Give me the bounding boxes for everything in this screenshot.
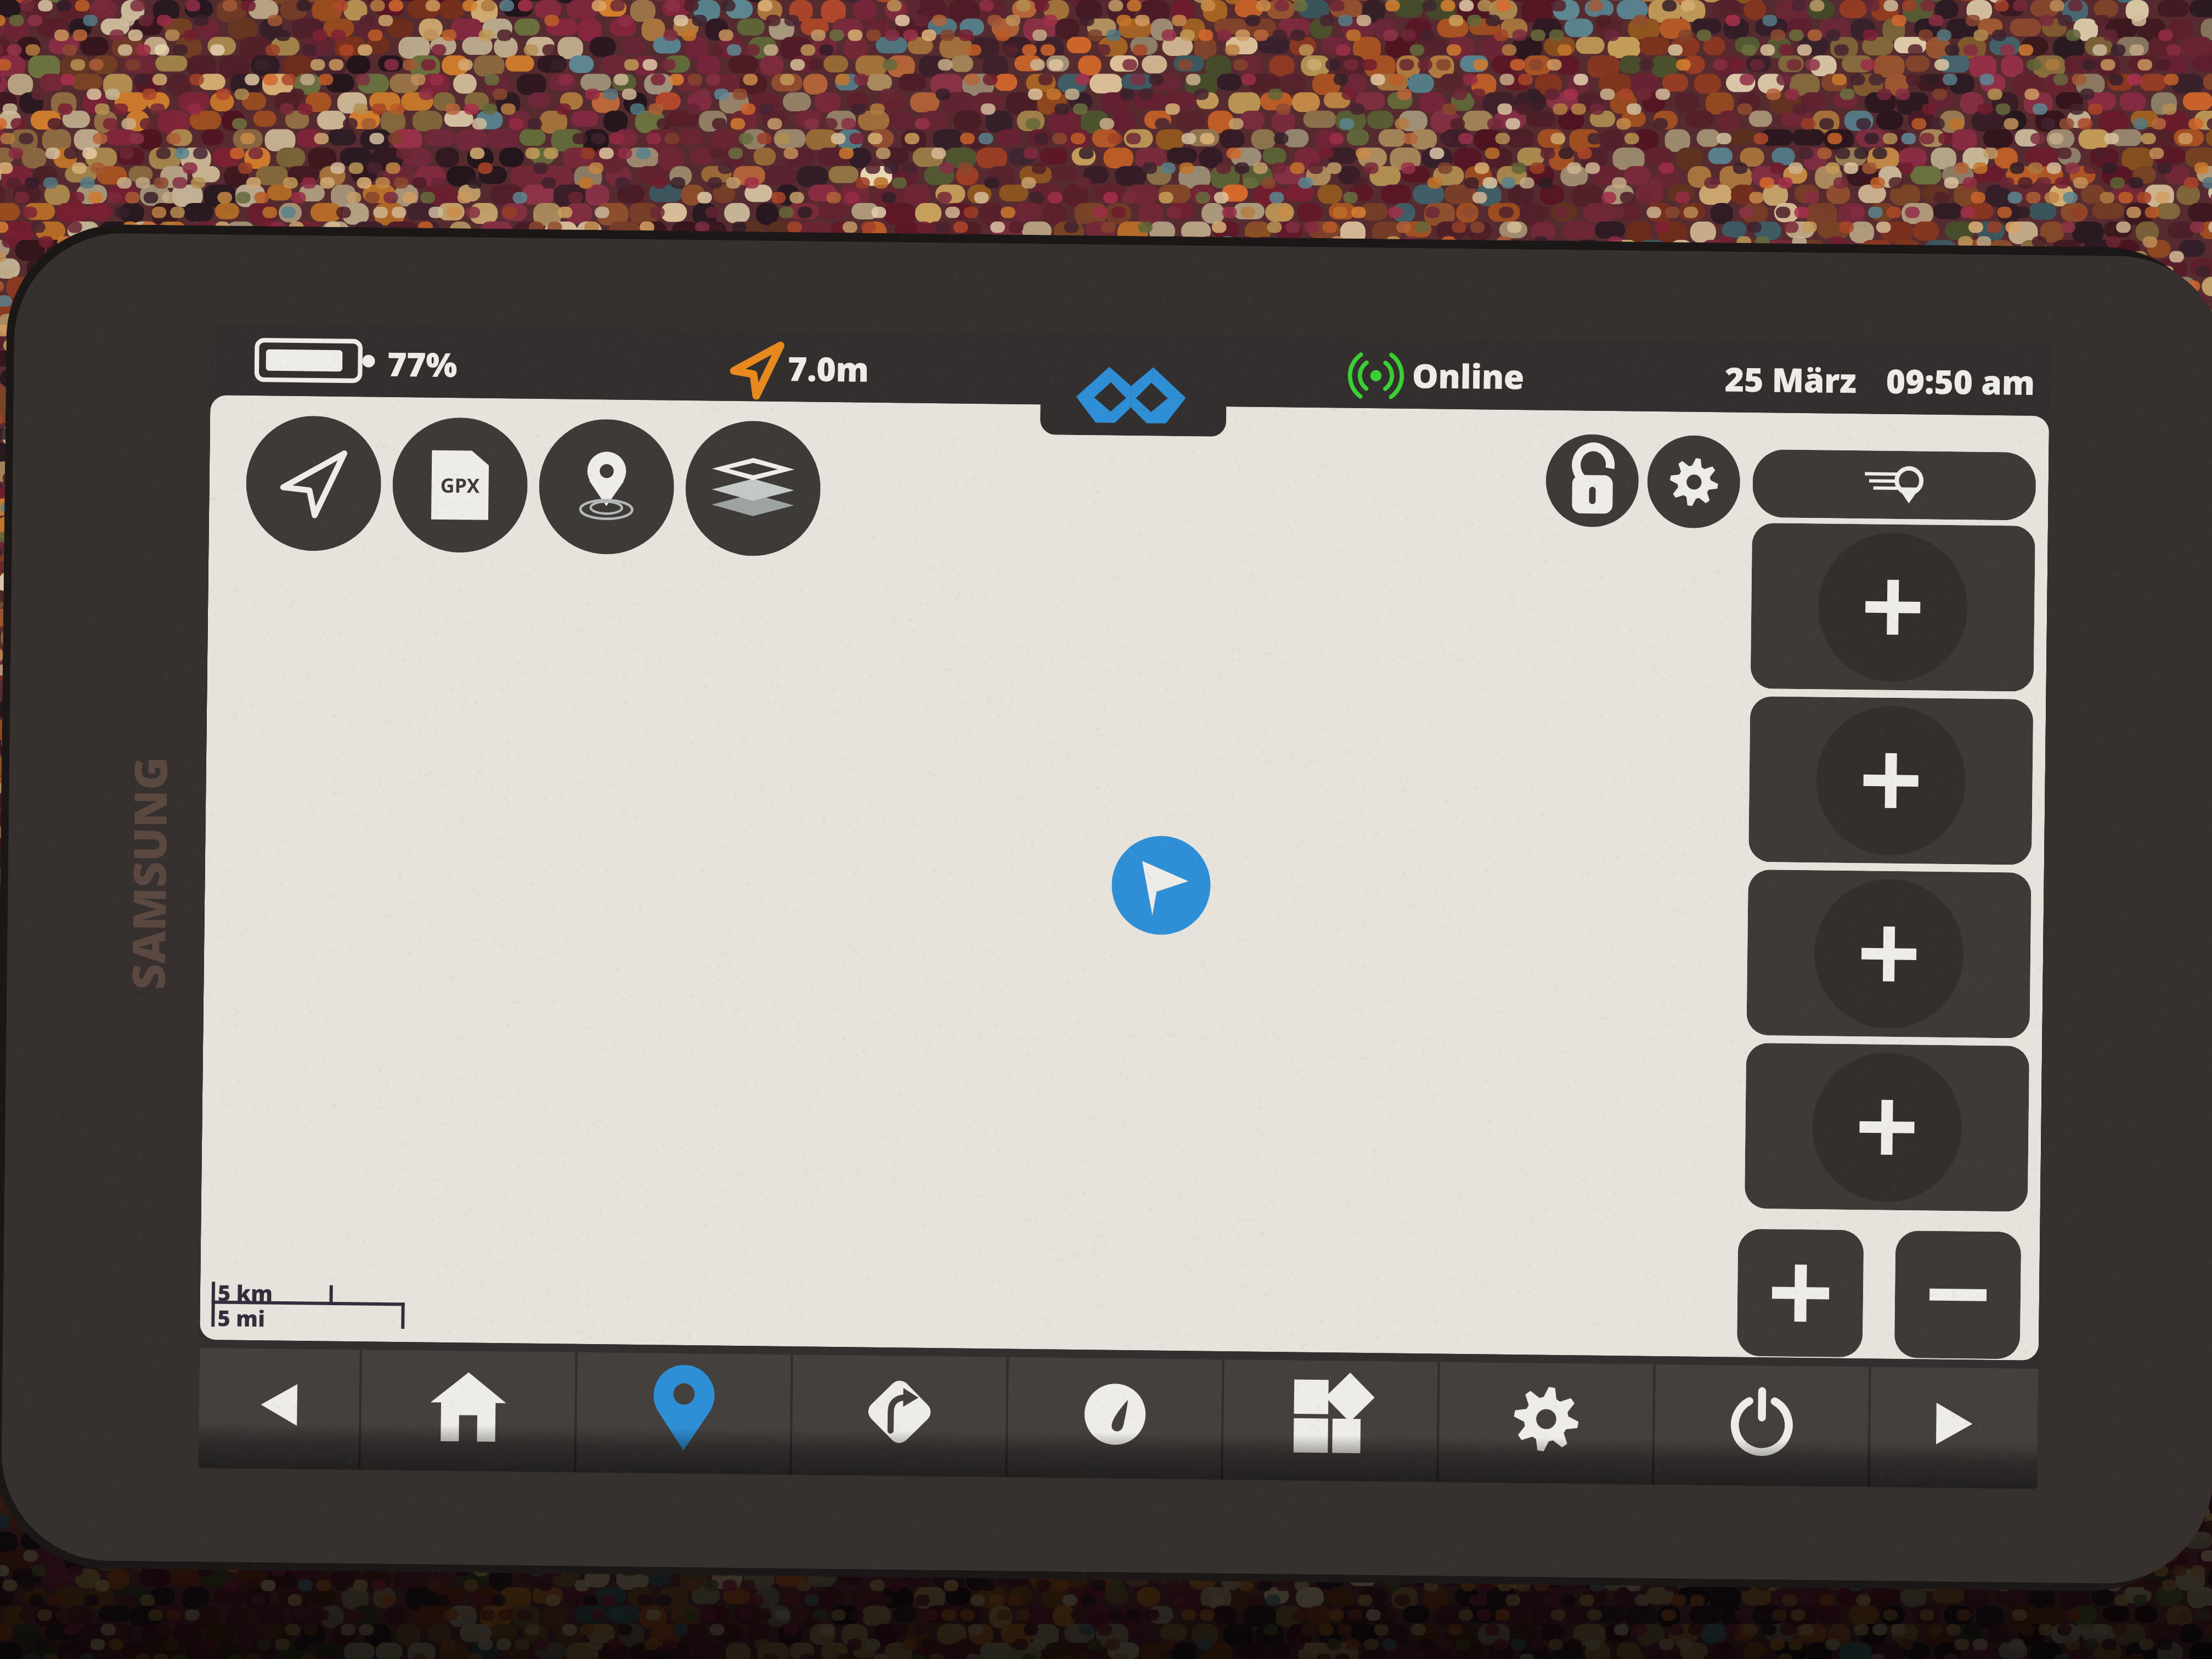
button[interactable]: Previous	[198, 1348, 360, 1470]
button[interactable]: GPX file	[392, 417, 528, 553]
button[interactable]: Add waypoint	[1750, 523, 2035, 692]
button[interactable]: Zoom in	[1737, 1229, 1864, 1357]
button[interactable]: Navigate	[245, 415, 382, 552]
button[interactable]: Add marker	[1746, 869, 2031, 1038]
button[interactable]: Settings	[1647, 435, 1741, 529]
staticText: 09:50 am	[1886, 358, 2035, 405]
button[interactable]: Map	[576, 1352, 791, 1475]
button[interactable]: Dashboard	[1007, 1357, 1222, 1480]
staticText: 77%	[387, 341, 458, 387]
staticText: Online	[1412, 353, 1525, 399]
button[interactable]: Home	[361, 1350, 575, 1472]
staticText: 25 März	[1725, 356, 1857, 403]
button[interactable]: Waypoint	[538, 419, 675, 555]
button[interactable]: Add favourite	[1748, 696, 2033, 865]
button[interactable]: Apps	[1223, 1360, 1438, 1482]
button[interactable]: Settings	[1439, 1362, 1653, 1485]
staticText: GPX	[440, 472, 480, 499]
button[interactable]: Zoom out	[1894, 1231, 2021, 1359]
button[interactable]: Map layers	[685, 420, 821, 557]
button[interactable]: Add note	[1744, 1043, 2029, 1212]
button[interactable]: Power	[1654, 1364, 1869, 1487]
staticText: 7.0m	[788, 346, 869, 392]
button[interactable]: Follow position	[1752, 449, 2036, 521]
staticText: 5 km	[218, 1277, 273, 1308]
button[interactable]: Directions	[792, 1355, 1007, 1477]
staticText: 5 mi	[217, 1303, 265, 1333]
button[interactable]: Next	[1870, 1367, 2038, 1489]
button[interactable]: Lock screen	[1545, 434, 1639, 528]
staticText: SAMSUNG	[116, 756, 180, 990]
